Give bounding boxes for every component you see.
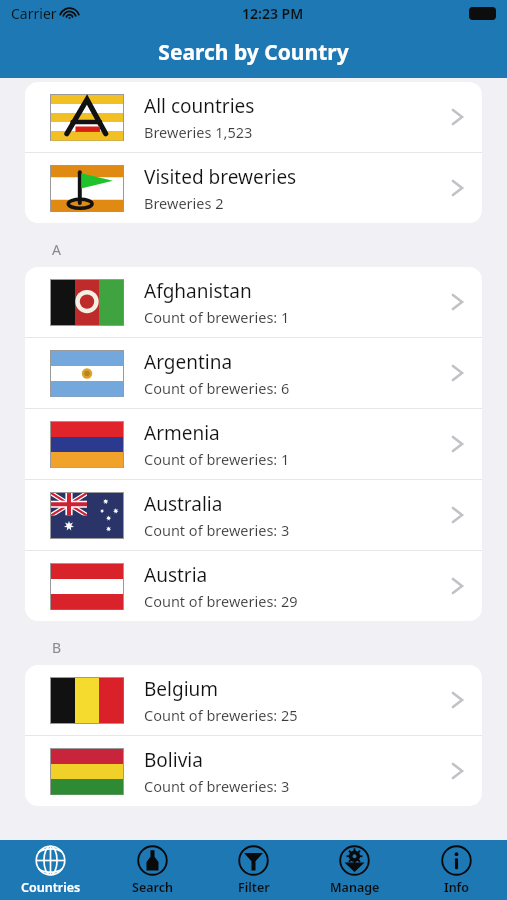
staticText: 12:23 PM xyxy=(242,4,304,23)
button[interactable]: Filter xyxy=(203,840,304,900)
staticText: Count of breweries: 25 xyxy=(144,705,298,725)
staticText: Info xyxy=(444,879,469,896)
button[interactable]: Bolivia xyxy=(25,736,482,806)
button[interactable]: Countries xyxy=(0,840,101,900)
button[interactable]: Australia xyxy=(25,480,482,551)
staticText: Search by Country xyxy=(158,38,349,67)
button[interactable]: Afghanistan xyxy=(25,267,482,338)
staticText: Filter xyxy=(238,879,270,896)
button[interactable]: Manage xyxy=(304,840,405,900)
button[interactable]: Argentina xyxy=(25,338,482,409)
staticText: Manage xyxy=(330,879,380,896)
staticText: Search xyxy=(132,879,173,896)
staticText: Count of breweries: 3 xyxy=(144,776,290,796)
button[interactable]: Search xyxy=(102,840,203,900)
staticText: Carrier xyxy=(11,4,57,23)
staticText: All countries xyxy=(144,93,255,119)
staticText: Countries xyxy=(21,879,81,896)
staticText: Bolivia xyxy=(144,747,203,773)
staticText: B xyxy=(52,638,62,657)
staticText: Belgium xyxy=(144,676,219,702)
staticText: Count of breweries: 3 xyxy=(144,520,290,540)
staticText: A xyxy=(52,240,61,259)
button[interactable]: All countries xyxy=(25,82,482,153)
staticText: Armenia xyxy=(144,420,220,446)
staticText: Count of breweries: 1 xyxy=(144,449,290,469)
button[interactable]: Belgium xyxy=(25,665,482,736)
staticText: Austria xyxy=(144,562,208,588)
button[interactable]: Info xyxy=(406,840,507,900)
button[interactable]: Austria xyxy=(25,551,482,621)
staticText: Count of breweries: 6 xyxy=(144,378,290,398)
staticText: Australia xyxy=(144,491,223,517)
staticText: Count of breweries: 29 xyxy=(144,591,298,611)
staticText: Argentina xyxy=(144,349,233,375)
staticText: Breweries 1,523 xyxy=(144,122,253,142)
staticText: Afghanistan xyxy=(144,278,252,304)
staticText: Count of breweries: 1 xyxy=(144,307,290,327)
button[interactable]: Visited breweries xyxy=(25,153,482,223)
staticText: Breweries 2 xyxy=(144,193,224,213)
button[interactable]: Armenia xyxy=(25,409,482,480)
staticText: Visited breweries xyxy=(144,164,297,190)
